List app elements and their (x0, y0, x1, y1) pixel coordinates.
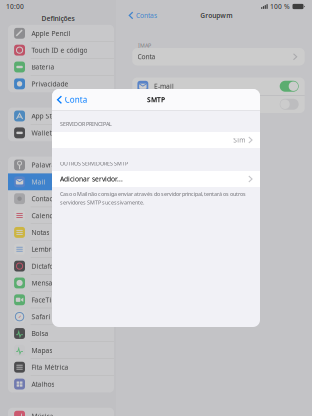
staticText: Mensagens (31, 278, 67, 287)
staticText: Conta (138, 52, 156, 61)
staticText: IMAP (138, 42, 151, 49)
staticText: Calendário (31, 211, 66, 220)
button[interactable]: Calendário (8, 207, 114, 224)
button[interactable]: Wallet e Apple Pay (8, 124, 114, 141)
button[interactable]: Safari (8, 308, 114, 325)
staticText: servidores SMTP sucessivamente. (60, 199, 144, 206)
button[interactable]: Contas (129, 11, 157, 20)
button[interactable]: Bolsa (8, 325, 114, 342)
staticText: Notas (154, 100, 172, 109)
button[interactable]: Palavras-passe (8, 157, 114, 173)
button[interactable]: Apple Pencil (8, 25, 114, 42)
staticText: Contactos (31, 194, 61, 203)
staticText: Lembretes (31, 245, 64, 254)
button[interactable]: Touch ID e código (8, 42, 114, 59)
button[interactable]: Adicionar servidor... (52, 171, 260, 187)
staticText: Fita Métrica (31, 363, 68, 372)
button[interactable]: App Store (8, 108, 114, 124)
staticText: Touch ID e código (31, 46, 87, 55)
button[interactable]: FaceTime (8, 291, 114, 308)
button[interactable]: Mail (8, 173, 114, 190)
button[interactable]: Contactos (8, 190, 114, 207)
staticText: Safari (31, 312, 50, 321)
button[interactable]: Mapas (8, 342, 114, 359)
staticText: Wallet e Apple Pay (31, 128, 90, 137)
button[interactable]: Notas (8, 224, 114, 241)
staticText: Caso o Mail não consiga enviar através d… (60, 190, 246, 198)
staticText: SERVIDOR PRINCIPAL (60, 120, 112, 128)
staticText: SMTP (147, 95, 165, 104)
button[interactable]: Bateria (8, 59, 114, 75)
staticText: Mapas (31, 346, 52, 355)
button[interactable]: Fita Métrica (8, 359, 114, 376)
staticText: OUTROS SERVIDORES SMTP (60, 160, 128, 167)
staticText: Groupwm (200, 11, 232, 20)
button[interactable]: Lembretes (8, 241, 114, 258)
staticText: Notas (31, 228, 49, 237)
staticText: App Store (31, 112, 62, 120)
staticText: Bateria (31, 63, 54, 71)
button[interactable]: Música (8, 408, 114, 416)
staticText: Conta (65, 94, 87, 105)
staticText: 10:00 (6, 2, 24, 11)
staticText: 100 % (270, 2, 290, 11)
button[interactable]: Atalhos (8, 376, 114, 392)
staticText: Palavras-passe (31, 161, 78, 169)
staticText: Bolsa (31, 329, 48, 338)
button[interactable]: Dictafone (8, 258, 114, 275)
staticText: Apple Pencil (31, 29, 70, 38)
staticText: Sim (233, 136, 245, 144)
staticText: FaceTime (31, 295, 61, 304)
staticText: Música (31, 412, 53, 416)
staticText: Atalhos (31, 380, 54, 388)
staticText: Definições (41, 14, 74, 23)
button[interactable]: Sim (52, 132, 260, 148)
button[interactable]: Mensagens (8, 274, 114, 291)
staticText: Privacidade (31, 79, 68, 88)
button[interactable]: Conta (132, 48, 305, 65)
staticText: Adicionar servidor... (60, 175, 123, 183)
staticText: E-mail (154, 82, 174, 91)
button[interactable]: Conta (57, 90, 87, 109)
staticText: Contas (136, 11, 157, 20)
staticText: Mail (31, 177, 45, 186)
staticText: Dictafone (31, 262, 61, 271)
button[interactable]: Privacidade (8, 75, 114, 92)
